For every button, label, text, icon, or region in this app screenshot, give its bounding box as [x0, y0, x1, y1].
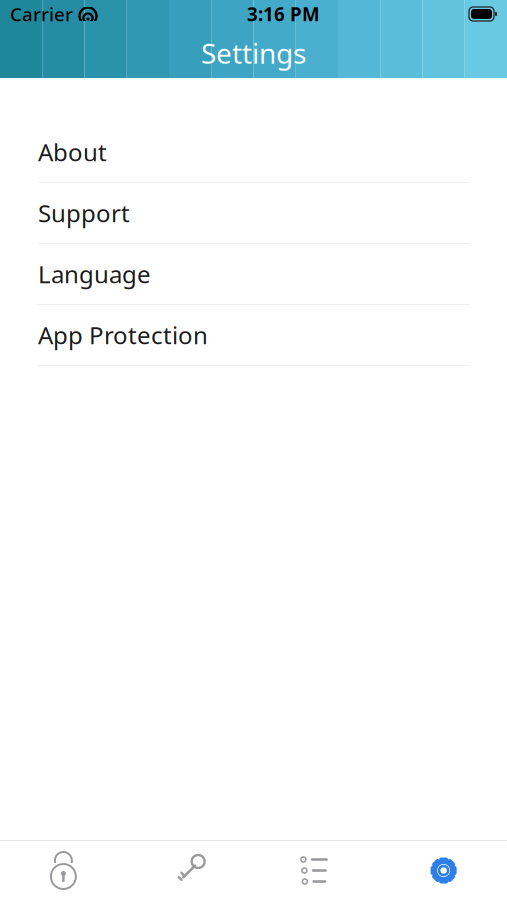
button[interactable]: About [0, 122, 507, 183]
staticText: Carrier [10, 2, 73, 26]
staticText: 3:16 PM [247, 2, 320, 26]
staticText: Language [38, 258, 151, 290]
staticText: Settings [201, 34, 306, 72]
button[interactable]: Passwords [0, 841, 127, 900]
button[interactable]: Items [253, 841, 380, 900]
button[interactable]: Support [0, 183, 507, 244]
staticText: Support [38, 197, 130, 229]
button[interactable]: Language [0, 244, 507, 305]
button[interactable]: Settings [380, 841, 507, 900]
staticText: App Protection [38, 319, 208, 351]
staticText: About [38, 136, 107, 168]
button[interactable]: App Protection [0, 305, 507, 366]
button[interactable]: Keys [127, 841, 254, 900]
